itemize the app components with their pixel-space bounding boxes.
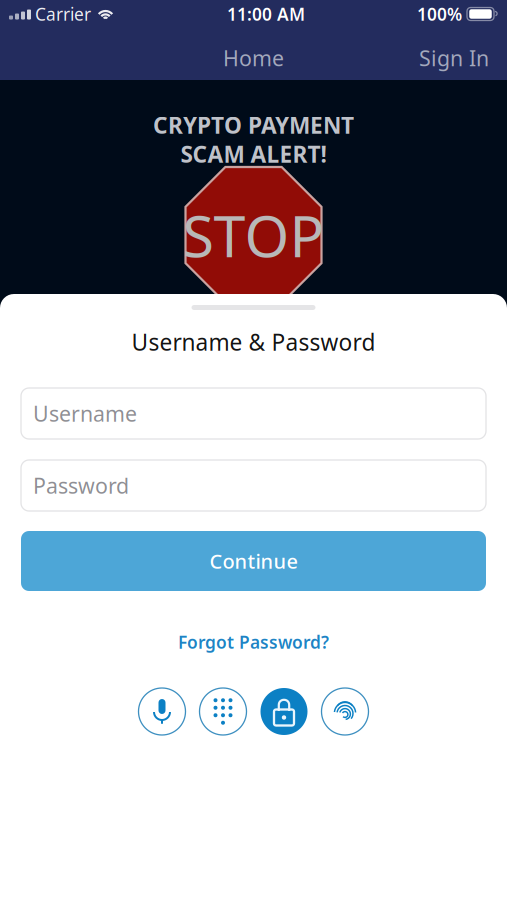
staticText: STOP — [182, 197, 324, 273]
button[interactable]: Username — [0, 388, 507, 439]
button[interactable]: Password — [0, 460, 507, 511]
button[interactable]: Fingerprint — [321, 688, 368, 735]
staticText: CRYPTO PAYMENT — [153, 110, 354, 140]
staticText: Home — [223, 44, 284, 72]
staticText: Username & Password — [131, 327, 375, 357]
staticText: Password — [33, 471, 129, 500]
staticText: 11:00 AM — [227, 2, 305, 25]
button[interactable]: Password — [260, 688, 307, 735]
button[interactable]: Keypad — [199, 688, 246, 735]
button[interactable]: Sign In — [401, 36, 507, 80]
staticText: Forgot Password? — [178, 630, 329, 653]
button[interactable]: Continue — [0, 531, 507, 591]
button[interactable]: Home — [0, 36, 507, 80]
staticText: 100% — [417, 2, 462, 25]
staticText: Sign In — [419, 44, 489, 72]
button[interactable]: Forgot Password? — [168, 630, 339, 654]
staticText: Continue — [209, 548, 297, 574]
button[interactable]: Voice input — [138, 688, 185, 735]
staticText: Carrier — [35, 2, 91, 25]
staticText: Username — [33, 399, 137, 428]
staticText: SCAM ALERT! — [180, 139, 326, 169]
